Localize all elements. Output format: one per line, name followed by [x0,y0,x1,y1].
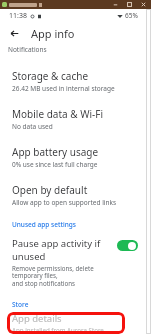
staticText: Notifications [8,45,47,54]
button[interactable]: Pause app activity toggle [117,240,138,251]
staticText: Open by default [12,183,88,197]
button[interactable]: Back [5,24,23,42]
staticText: App details [12,312,62,325]
button[interactable]: Mobile data & Wi-Fi [0,106,146,132]
staticText: Remove permissions, delete temporary fil… [12,264,113,288]
staticText: 11:38 [9,11,27,21]
button[interactable]: App details [7,312,125,334]
button[interactable]: App battery usage [0,144,146,170]
staticText: 0% use since last full charge [12,160,98,169]
staticText: Allow app to open supported links [12,198,117,207]
button[interactable]: Open by default [0,182,146,208]
staticText: Mobile data & Wi-Fi [12,107,104,121]
staticText: Store [12,300,29,309]
staticText: 65% [125,11,138,20]
staticText: Pause app activity if unused [12,237,113,263]
staticText: Storage & cache [12,69,89,83]
staticText: App battery usage [12,145,99,159]
staticText: App installed from Aurora Store [12,326,104,334]
button[interactable]: Pause app activity if unused [0,235,146,290]
staticText: 26.42 MB used in internal storage [12,84,115,93]
staticText: App info [31,26,75,41]
button[interactable]: Storage & cache [0,68,146,94]
staticText: No data used [12,122,53,131]
staticText: Unused app settings [12,220,76,229]
